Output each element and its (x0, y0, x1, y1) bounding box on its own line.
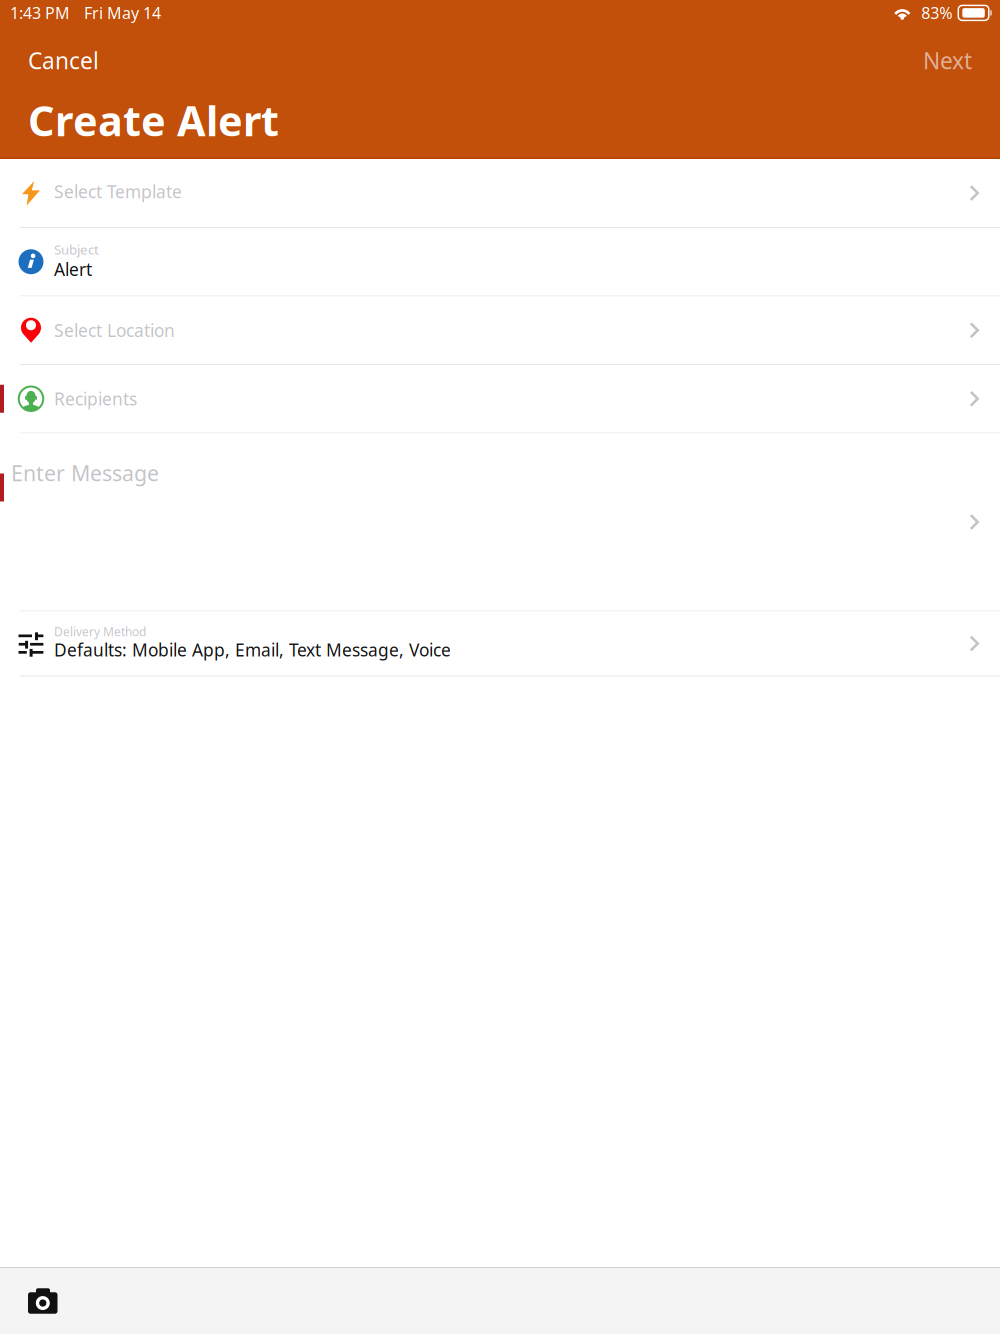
button[interactable]: Recipients (0, 365, 1000, 432)
staticText: Defaults: Mobile App, Email, Text Messag… (54, 638, 451, 661)
staticText: Enter Message (11, 458, 159, 488)
staticText: Fri May 14 (84, 2, 161, 24)
staticText: Subject (54, 240, 99, 259)
button[interactable]: Enter Message (0, 433, 1000, 610)
button[interactable]: Select Template (0, 159, 1000, 227)
button[interactable]: Next (913, 38, 982, 83)
button[interactable]: Select Location (0, 296, 1000, 364)
staticText: 1:43 PM (10, 2, 70, 24)
staticText: Next (923, 45, 972, 76)
staticText: Alert (54, 257, 92, 281)
button[interactable]: Camera (14, 1272, 71, 1330)
staticText: Select Template (54, 180, 182, 203)
staticText: Create Alert (28, 92, 279, 148)
button[interactable]: Subject (0, 228, 1000, 295)
staticText: Delivery Method (54, 623, 146, 640)
staticText: Select Location (54, 318, 175, 342)
button[interactable]: Delivery Method (0, 611, 1000, 675)
staticText: 83% (921, 2, 952, 24)
staticText: Cancel (28, 45, 99, 76)
button[interactable]: Cancel (18, 38, 109, 83)
staticText: Recipients (54, 387, 137, 410)
